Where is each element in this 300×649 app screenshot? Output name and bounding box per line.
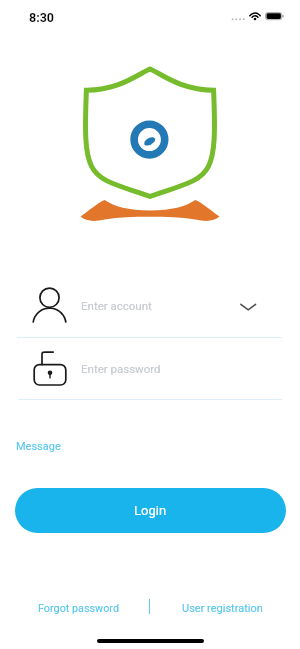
button[interactable]: Message	[10, 437, 67, 456]
staticText: Enter password	[81, 362, 161, 375]
button[interactable]: Enter password	[0, 348, 282, 394]
staticText: User registration	[182, 602, 263, 615]
button[interactable]: Enter account	[0, 282, 232, 328]
staticText: Login	[134, 503, 167, 518]
button[interactable]: User registration	[176, 598, 269, 619]
staticText: Enter account	[81, 299, 152, 312]
button[interactable]: Forgot password	[32, 598, 126, 619]
staticText: 8:30	[29, 10, 55, 25]
staticText: Message	[16, 440, 61, 453]
staticText: Forgot password	[38, 602, 120, 615]
button[interactable]: Choose account	[232, 288, 272, 322]
button[interactable]: Login	[15, 488, 286, 533]
